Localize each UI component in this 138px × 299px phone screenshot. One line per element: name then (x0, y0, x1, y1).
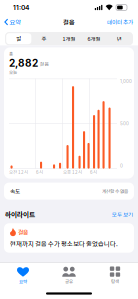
staticText: 6개월 (88, 35, 101, 42)
button[interactable]: 탐색 (92, 263, 138, 287)
button[interactable]: 속도 (4, 183, 134, 200)
button[interactable]: 모두 보기 (112, 211, 133, 218)
staticText: 년 (117, 35, 122, 42)
staticText: 모두 보기 (112, 211, 133, 218)
staticText: 6시 (90, 169, 97, 175)
staticText: 11:04 (13, 3, 29, 12)
staticText: 1개월 (62, 35, 75, 42)
button[interactable]: 요약 (0, 263, 46, 287)
staticText: 총 (9, 50, 13, 57)
staticText: 데이터 추가 (107, 18, 133, 26)
staticText: 오늘 (9, 69, 17, 76)
button[interactable]: 일 (6, 33, 31, 44)
staticText: 0 (120, 163, 123, 169)
staticText: 일 (16, 35, 21, 42)
staticText: 현재까지 걸음 수가 평소보다 줄었습니다. (10, 239, 118, 248)
staticText: 걸음 (18, 228, 28, 236)
staticText: 요약 (9, 18, 21, 26)
staticText: 오전 12시 (9, 169, 28, 175)
button[interactable]: 6개월 (82, 33, 107, 44)
staticText: 주 (41, 35, 46, 42)
button[interactable]: 요약 (0, 15, 25, 28)
button[interactable]: 데이터 추가 (103, 15, 138, 28)
button[interactable]: 공유 (46, 263, 92, 287)
staticText: 6시 (36, 169, 43, 175)
staticText: 500 (120, 121, 129, 126)
button[interactable]: 주 (31, 33, 56, 44)
button[interactable]: 걸음 (4, 223, 134, 253)
staticText: 속도 (10, 187, 20, 195)
staticText: 2,882 (9, 57, 38, 69)
staticText: 오후 12시 (63, 169, 82, 175)
button[interactable]: 년 (107, 33, 132, 44)
staticText: 1,000 (120, 79, 132, 84)
staticText: 탐색 (111, 278, 119, 285)
staticText: 계산할 수 없음 (102, 188, 128, 195)
staticText: 걸음 (63, 17, 75, 27)
staticText: 공유 (65, 278, 73, 285)
button[interactable]: 1개월 (56, 33, 81, 44)
staticText: 요약 (19, 278, 27, 285)
staticText: 걸음 (39, 60, 49, 67)
staticText: 하이라이트 (5, 210, 35, 219)
